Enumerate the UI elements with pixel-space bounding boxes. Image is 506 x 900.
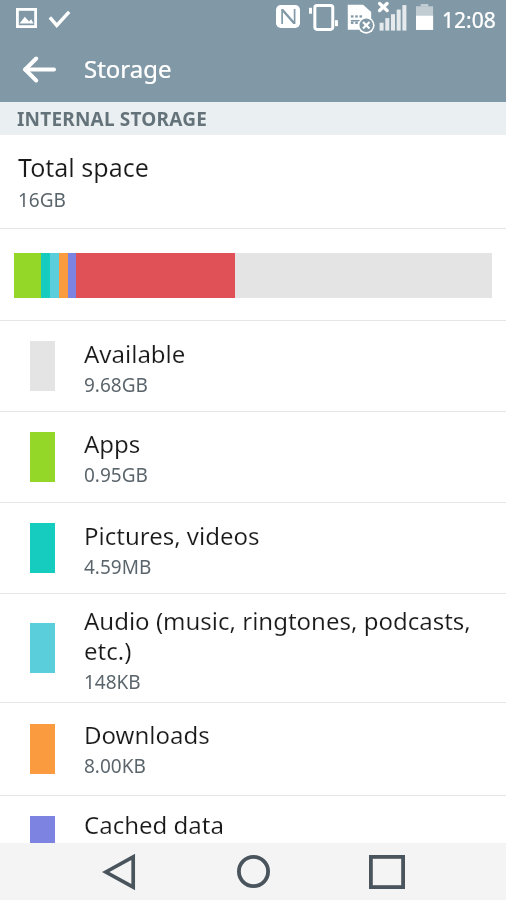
staticText: 12:08	[442, 6, 496, 35]
staticText: Storage	[84, 52, 172, 85]
staticText: Cached data	[84, 808, 224, 841]
staticText: Downloads	[84, 718, 210, 751]
staticText: 16GB	[18, 187, 66, 213]
button[interactable]: Recent apps	[342, 843, 432, 900]
button[interactable]: Downloads	[0, 702, 506, 795]
button[interactable]: Pictures, videos	[0, 502, 506, 593]
button[interactable]: Apps	[0, 411, 506, 502]
button[interactable]: Available	[0, 320, 506, 411]
button[interactable]: Audio (music, ringtones, podcasts, etc.)	[0, 593, 506, 702]
staticText: Available	[84, 337, 186, 370]
button[interactable]: Cached data	[0, 795, 506, 851]
button[interactable]: Home	[208, 843, 298, 900]
staticText: 0.95GB	[84, 462, 148, 488]
staticText: Pictures, videos	[84, 519, 260, 552]
staticText: 4.59MB	[84, 554, 152, 580]
staticText: 8.00KB	[84, 753, 146, 779]
staticText: 148KB	[84, 669, 141, 695]
staticText: 9.68GB	[84, 372, 148, 398]
staticText: Audio (music, ringtones, podcasts, etc.)	[84, 604, 476, 667]
staticText: Total space	[18, 150, 149, 184]
button[interactable]: Back	[74, 843, 164, 900]
button[interactable]: Navigate up	[9, 36, 69, 102]
staticText: Apps	[84, 427, 141, 460]
button[interactable]: Total space	[0, 135, 506, 228]
staticText: INTERNAL STORAGE	[17, 106, 207, 132]
